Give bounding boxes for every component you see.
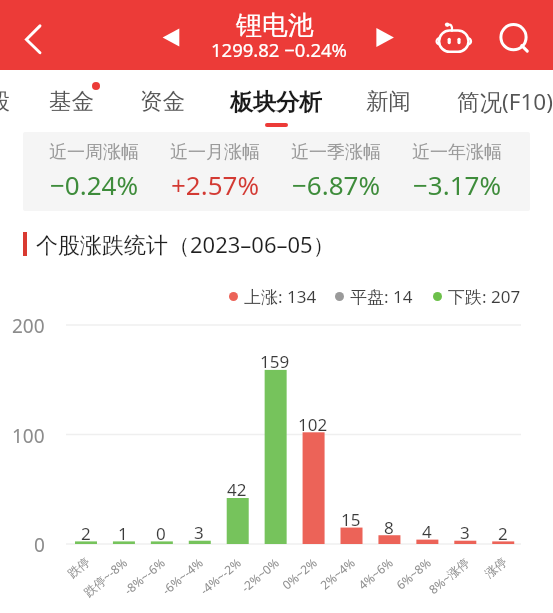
staticText: 涨停 [482,554,510,581]
staticText: 2 [81,522,91,545]
button[interactable]: 上涨: 134 [229,285,317,308]
staticText: 跌停 [65,554,93,581]
staticText: 15 [341,508,361,531]
staticText: 102 [298,413,328,436]
staticText: 4 [422,520,432,543]
staticText: 8 [384,516,394,539]
staticText: 2 [498,522,508,545]
staticText: 近一年涨幅 [412,141,502,164]
staticText: 159 [260,350,290,373]
staticText: 1 [118,522,128,545]
button[interactable]: 下跌: 207 [433,285,521,308]
button[interactable]: 近一周涨幅 [23,132,530,211]
staticText: -4%~-2% [196,554,244,598]
staticText: 3 [460,521,470,544]
staticText: 0%~2% [279,554,320,593]
staticText: 港股 [0,87,10,115]
button[interactable]: 基金 [49,87,94,115]
button[interactable]: Back [7,16,53,62]
staticText: 板块分析 [230,88,322,117]
staticText: 200 [12,313,45,339]
staticText: 0 [156,522,166,545]
button[interactable]: 平盘: 14 [335,285,413,308]
staticText: 基金 [49,87,94,115]
staticText: 3 [194,521,204,544]
button[interactable]: Search [490,14,538,60]
staticText: 8%~涨停 [425,554,472,597]
button[interactable]: 资金 [140,87,185,115]
staticText: 近一月涨幅 [170,141,260,164]
staticText: 42 [227,478,247,501]
button[interactable]: AI assistant [430,14,478,58]
staticText: 近一周涨幅 [49,141,139,164]
button[interactable]: 简况(F10) [457,86,553,117]
staticText: −3.17% [413,167,502,202]
staticText: 6%~8% [393,554,434,593]
staticText: 100 [12,423,45,449]
staticText: 简况(F10) [457,86,553,117]
staticText: -2%~0% [237,554,282,595]
staticText: 新闻 [366,87,411,115]
button[interactable]: Previous sector [152,21,188,55]
staticText: 4%~6% [355,554,396,593]
staticText: 近一季涨幅 [291,141,381,164]
button[interactable]: 新闻 [366,87,411,115]
button[interactable]: 个股涨跌统计（2023–06–05） [23,229,335,259]
staticText: +2.57% [171,167,260,202]
staticText: 资金 [140,87,185,115]
staticText: -8%~-6% [120,554,168,598]
staticText: 0 [34,532,45,558]
staticText: 平盘: 14 [350,285,413,308]
staticText: 1299.82 −0.24% [211,37,347,62]
staticText: −6.87% [292,167,381,202]
staticText: −0.24% [50,167,139,202]
staticText: -6%~-4% [158,554,206,598]
staticText: 下跌: 207 [448,285,521,308]
staticText: 个股涨跌统计（2023–06–05） [36,229,335,259]
button[interactable]: 板块分析 [230,88,322,117]
staticText: 上涨: 134 [244,285,317,308]
button[interactable]: 港股 [0,87,10,115]
staticText: 锂电池 [236,9,314,42]
button[interactable]: Next sector [366,21,402,55]
staticText: 跌停~-8% [80,554,130,600]
staticText: 2%~4% [317,554,358,593]
